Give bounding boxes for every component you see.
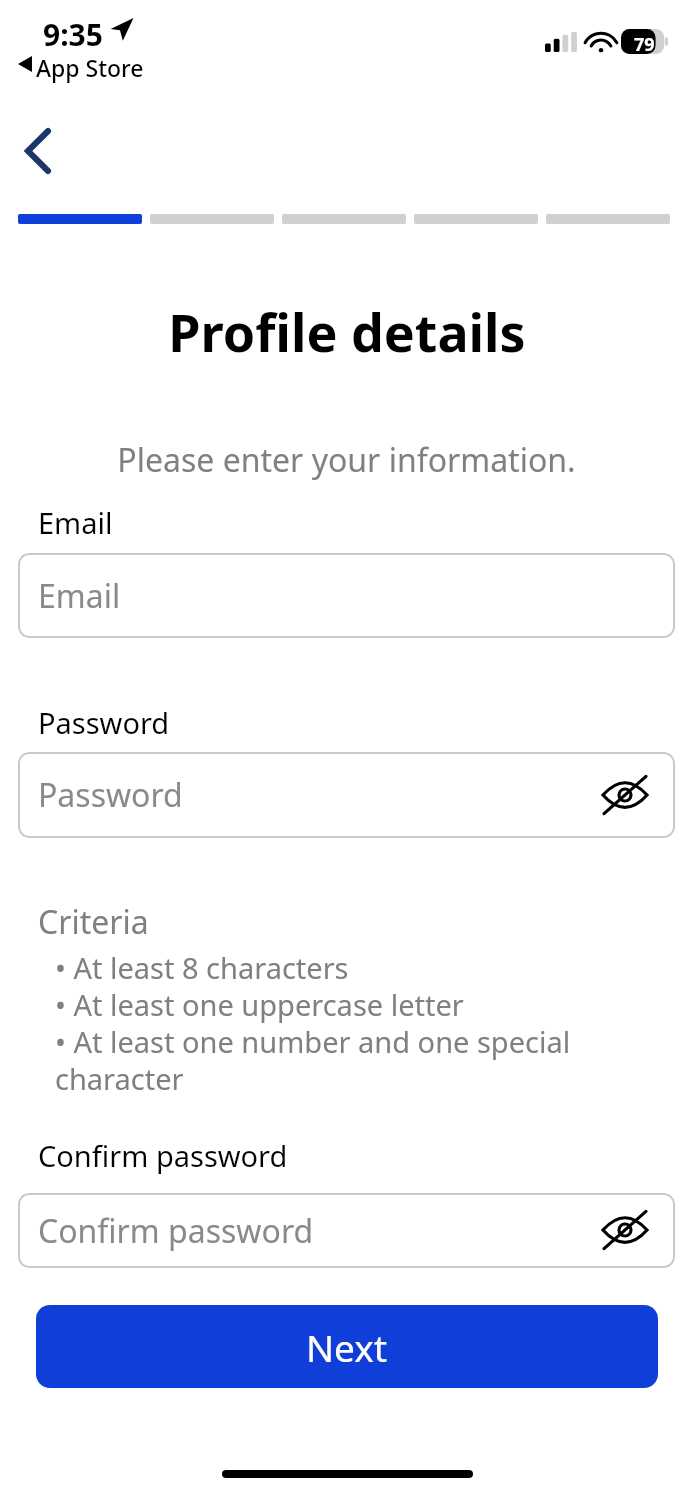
button[interactable]: Next [36,1305,658,1388]
staticText: • At least one uppercase letter [55,985,464,1024]
staticText: Confirm password [38,1136,288,1175]
staticText: Email [38,574,121,618]
staticText: Email [38,503,113,542]
button[interactable]: Password [18,752,675,838]
staticText: Password [38,773,183,817]
button[interactable]: Email [18,553,675,638]
staticText: 79 [634,32,655,52]
button[interactable]: Show confirm password [597,1207,653,1253]
button[interactable]: Back [10,122,66,180]
staticText: Criteria [38,900,149,944]
staticText: App Store [36,52,144,83]
staticText: Password [38,703,170,742]
staticText: Please enter your information. [117,438,576,480]
staticText: • At least 8 characters [55,948,349,987]
button[interactable]: Confirm password [18,1193,675,1268]
staticText: Next [306,1322,388,1372]
staticText: • At least one number and one special ch… [55,1022,665,1099]
button[interactable]: Show password [597,772,653,818]
staticText: 9:35 [43,14,103,55]
staticText: Confirm password [38,1209,314,1253]
staticText: Profile details [168,296,526,366]
